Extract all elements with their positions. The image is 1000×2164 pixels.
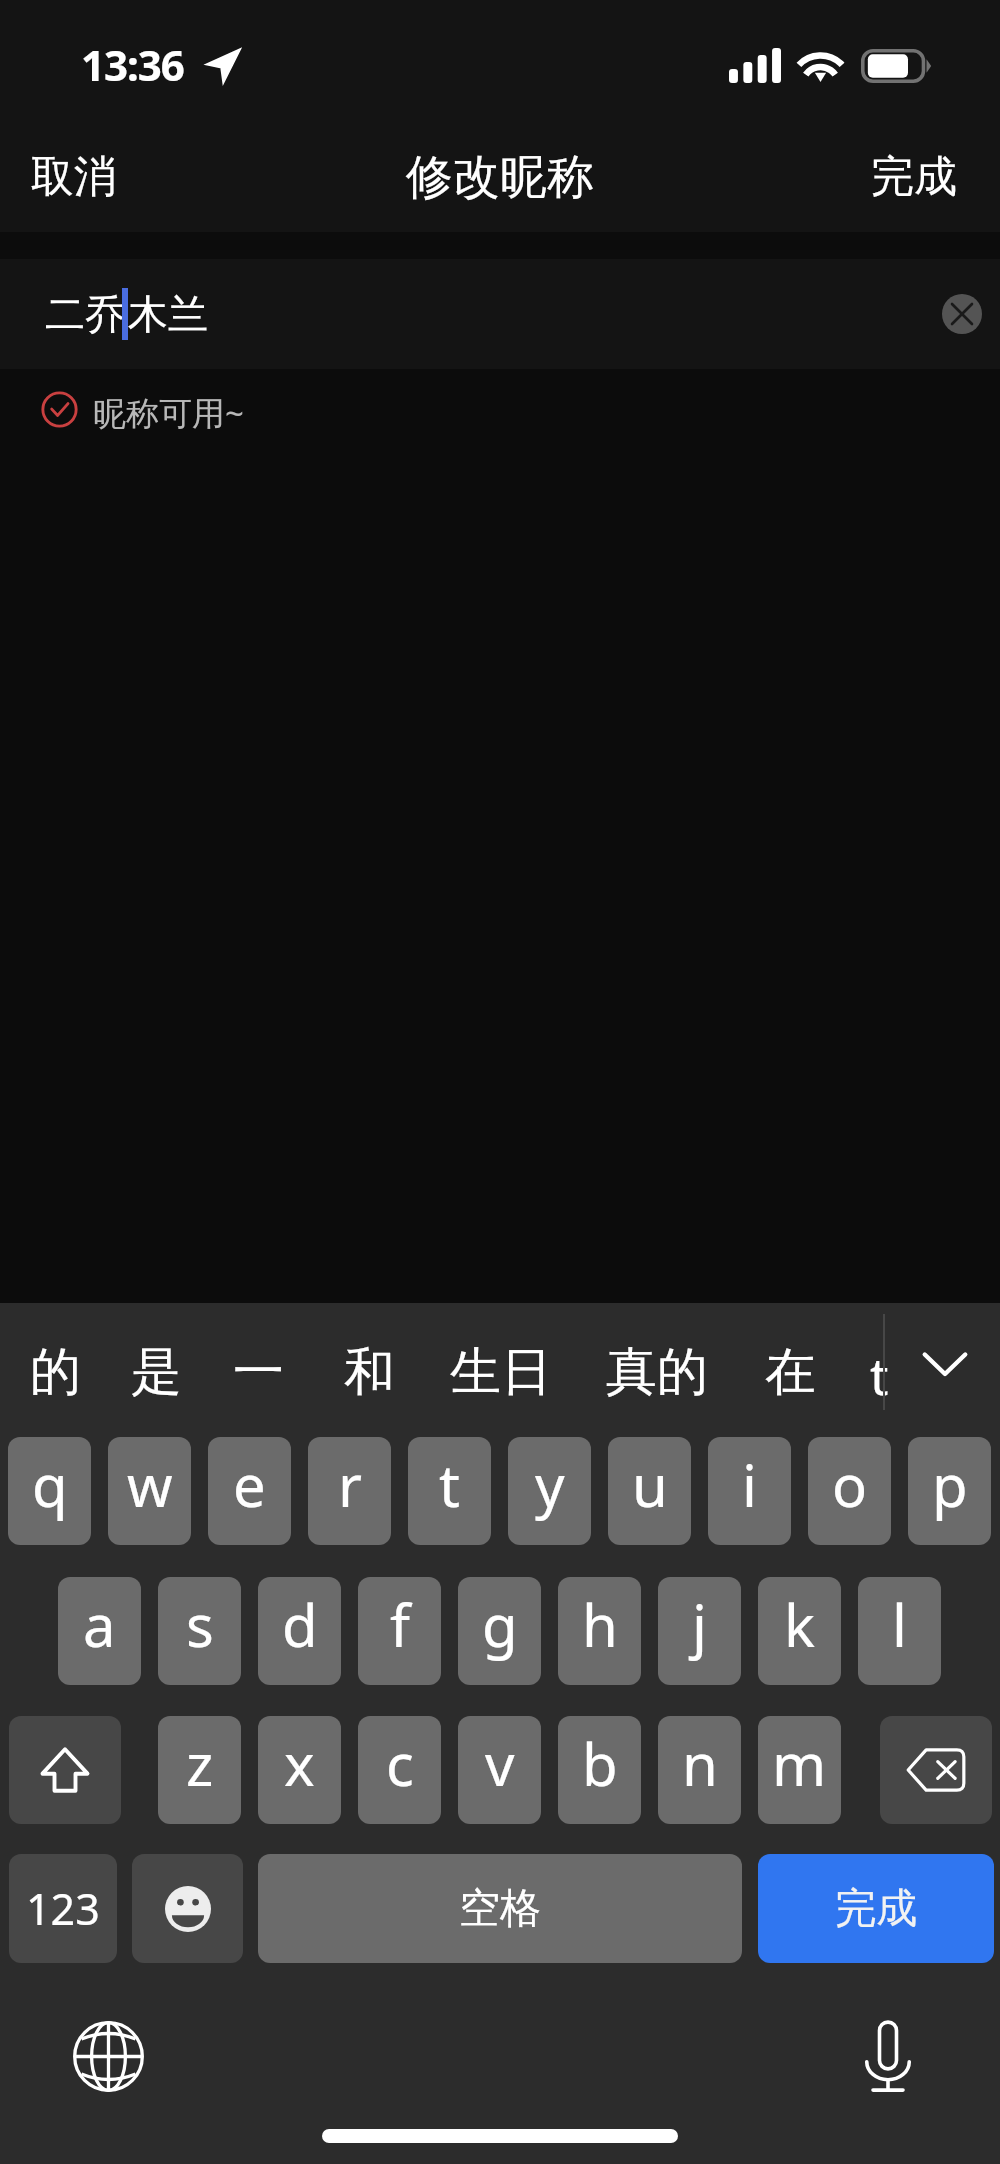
staticText: 木兰 <box>128 289 208 339</box>
staticText: 生日 <box>450 1340 552 1404</box>
staticText: 的 <box>30 1340 81 1404</box>
button[interactable]: n <box>658 1716 741 1824</box>
staticText: g <box>482 1585 518 1664</box>
staticText: s <box>186 1585 214 1664</box>
button[interactable]: 123 <box>9 1854 117 1963</box>
button[interactable]: g <box>458 1577 541 1685</box>
button[interactable]: y <box>508 1437 591 1545</box>
staticText: 真的 <box>606 1340 708 1404</box>
staticText: a <box>83 1585 116 1664</box>
staticText: 完成 <box>871 150 957 204</box>
staticText: 一 <box>233 1340 284 1404</box>
staticText: 13:36 <box>81 36 184 93</box>
staticText: z <box>186 1724 214 1803</box>
button[interactable]: Shift <box>9 1716 121 1824</box>
staticText: x <box>284 1724 315 1803</box>
button[interactable]: c <box>358 1716 441 1824</box>
button[interactable]: o <box>808 1437 891 1545</box>
staticText: b <box>582 1724 618 1803</box>
button[interactable]: j <box>658 1577 741 1685</box>
button[interactable]: 取消 <box>0 130 141 224</box>
button[interactable]: f <box>358 1577 441 1685</box>
button[interactable]: t <box>408 1437 491 1545</box>
staticText: u <box>632 1445 668 1524</box>
button[interactable]: r <box>308 1437 391 1545</box>
staticText: c <box>386 1724 414 1803</box>
button[interactable]: 完成 <box>847 130 1000 224</box>
button[interactable]: 在 <box>739 1320 842 1424</box>
staticText: 二乔 <box>45 289 125 339</box>
staticText: k <box>784 1585 815 1664</box>
staticText: 和 <box>344 1340 395 1404</box>
button[interactable]: Hide keyboard <box>910 1329 980 1399</box>
button[interactable]: 是 <box>105 1320 208 1424</box>
button[interactable]: w <box>108 1437 191 1545</box>
button[interactable]: Backspace <box>880 1716 992 1824</box>
button[interactable]: m <box>758 1716 841 1824</box>
button[interactable]: k <box>758 1577 841 1685</box>
button[interactable]: v <box>458 1716 541 1824</box>
staticText: t <box>439 1445 460 1524</box>
button[interactable]: b <box>558 1716 641 1824</box>
staticText: 在 <box>765 1340 816 1404</box>
staticText: 是 <box>131 1340 182 1404</box>
staticText: o <box>832 1445 868 1524</box>
staticText: d <box>282 1585 318 1664</box>
staticText: e <box>233 1445 266 1524</box>
button[interactable]: 完成 <box>758 1854 994 1963</box>
button[interactable]: s <box>158 1577 241 1685</box>
staticText: i <box>742 1445 757 1524</box>
button[interactable]: u <box>608 1437 691 1545</box>
staticText: h <box>582 1585 618 1664</box>
button[interactable]: p <box>908 1437 991 1545</box>
button[interactable]: i <box>708 1437 791 1545</box>
button[interactable]: 真的 <box>580 1320 734 1424</box>
button[interactable]: 和 <box>318 1320 421 1424</box>
button[interactable]: Clear text <box>942 294 982 334</box>
staticText: t <box>870 1340 889 1409</box>
staticText: 123 <box>26 1879 100 1938</box>
staticText: j <box>692 1585 707 1664</box>
button[interactable]: e <box>208 1437 291 1545</box>
staticText: l <box>892 1585 907 1664</box>
staticText: v <box>485 1724 515 1803</box>
button[interactable]: z <box>158 1716 241 1824</box>
button[interactable]: Switch keyboard <box>73 2021 144 2092</box>
staticText: 修改昵称 <box>406 148 594 207</box>
staticText: q <box>32 1445 68 1524</box>
staticText: n <box>682 1724 718 1803</box>
button[interactable]: Dictation <box>850 2019 926 2095</box>
button[interactable]: x <box>258 1716 341 1824</box>
button[interactable]: d <box>258 1577 341 1685</box>
button[interactable]: q <box>8 1437 91 1545</box>
staticText: 空格 <box>459 1883 541 1935</box>
staticText: 昵称可用~ <box>93 390 244 435</box>
staticText: w <box>127 1445 173 1524</box>
staticText: r <box>338 1445 362 1524</box>
button[interactable]: 空格 <box>258 1854 742 1963</box>
button[interactable]: 的 <box>4 1320 107 1424</box>
button[interactable]: 一 <box>207 1320 310 1424</box>
staticText: f <box>390 1585 410 1664</box>
button[interactable]: l <box>858 1577 941 1685</box>
button[interactable]: a <box>58 1577 141 1685</box>
button[interactable]: h <box>558 1577 641 1685</box>
button[interactable]: Emoji <box>132 1854 243 1963</box>
staticText: p <box>932 1445 968 1524</box>
button[interactable]: 生日 <box>424 1320 578 1424</box>
staticText: m <box>772 1724 827 1803</box>
staticText: 完成 <box>835 1883 917 1935</box>
staticText: y <box>535 1445 565 1524</box>
staticText: 取消 <box>31 150 117 204</box>
button[interactable]: t <box>844 1320 915 1429</box>
